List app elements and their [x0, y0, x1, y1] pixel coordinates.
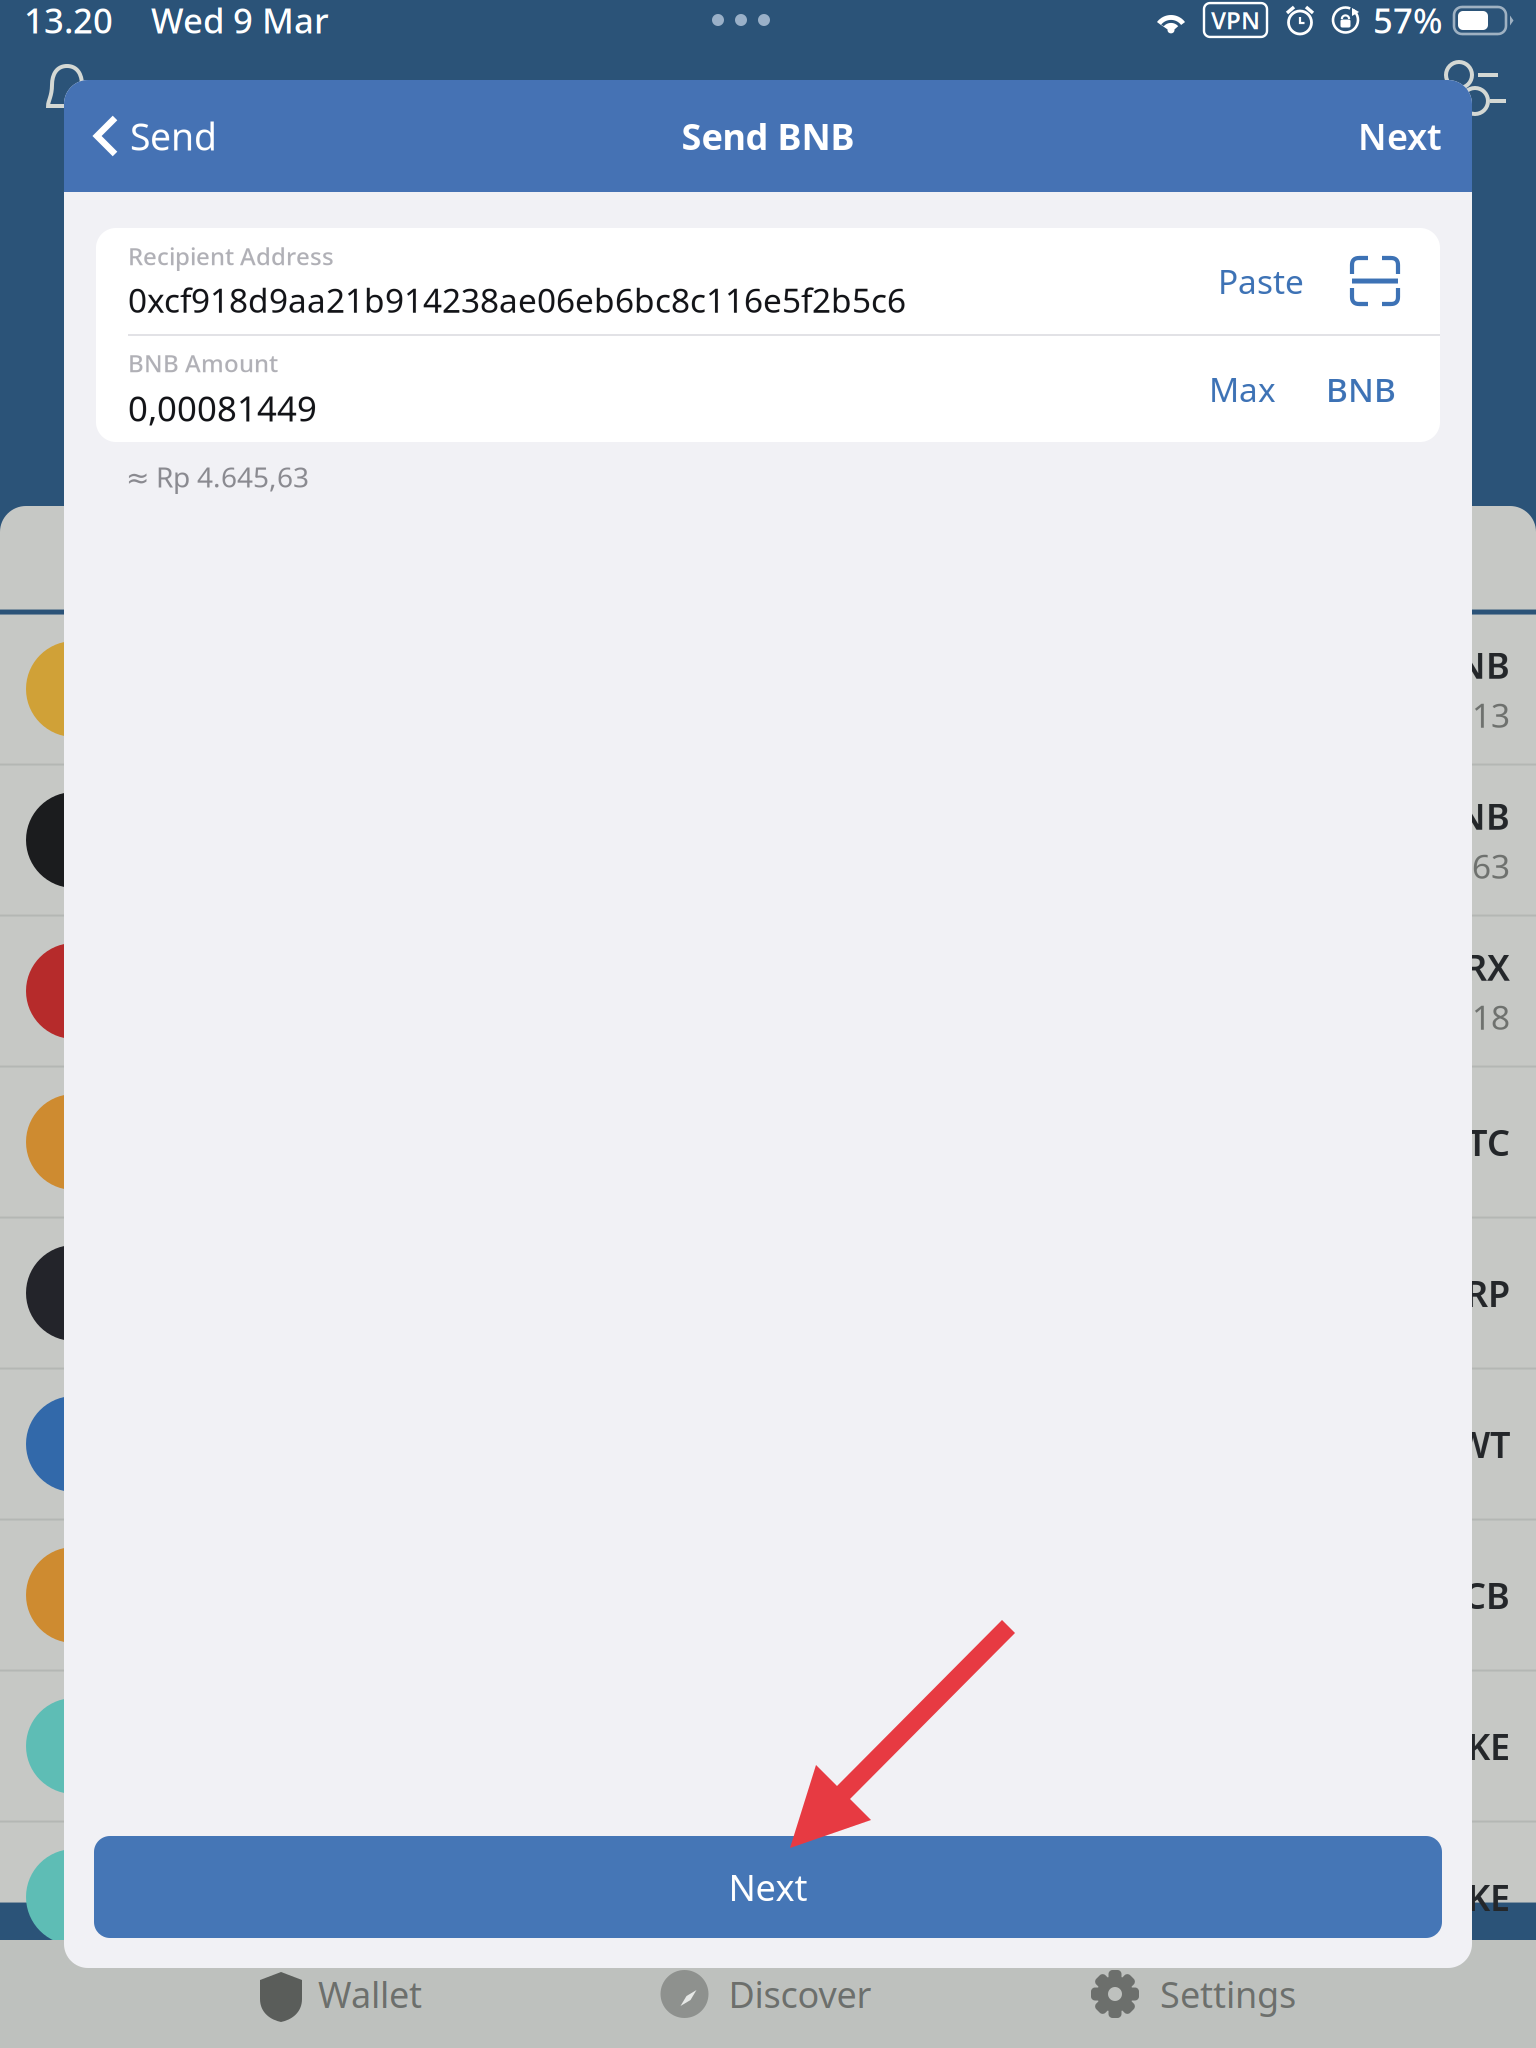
- staticText: XRP: [1442, 1269, 1510, 1317]
- staticText: Wallet: [318, 1970, 422, 2018]
- button[interactable]: BNB: [1314, 357, 1408, 421]
- staticText: Send BNB: [681, 112, 854, 160]
- staticText: BNB: [1326, 367, 1396, 411]
- staticText: KE: [1467, 1722, 1510, 1770]
- staticText: WT: [1456, 1420, 1510, 1468]
- button[interactable]: Discover: [618, 1940, 918, 2048]
- staticText: Recipient Address: [128, 240, 334, 272]
- button[interactable]: Next: [94, 1836, 1442, 1938]
- staticText: Rp 36.615,13: [1308, 693, 1510, 737]
- staticText: BNB: [1433, 641, 1510, 689]
- staticText: Next: [1358, 112, 1442, 160]
- staticText: TRX: [1444, 943, 1510, 991]
- staticText: Rp 8.126,18: [1327, 995, 1510, 1039]
- button[interactable]: Wallet: [191, 1940, 491, 2048]
- staticText: 13.20: [24, 0, 113, 43]
- staticText: 0xcf918d9aa21b914238ae06eb6bc8c116e5f2b5…: [128, 278, 906, 322]
- staticText: Max: [1209, 367, 1276, 411]
- staticText: BNB: [1433, 792, 1510, 840]
- staticText: VPN: [1211, 4, 1260, 36]
- button[interactable]: Max: [1197, 357, 1288, 421]
- staticText: Next: [728, 1863, 807, 1911]
- button[interactable]: Next: [1350, 98, 1450, 174]
- staticText: BTC: [1443, 1118, 1510, 1166]
- button[interactable]: Scan QR code: [1342, 248, 1408, 314]
- staticText: CB: [1463, 1571, 1510, 1619]
- staticText: 57%: [1373, 0, 1443, 43]
- staticText: ≈ Rp 4.645,63: [126, 458, 309, 495]
- staticText: Discover: [728, 1970, 871, 2018]
- staticText: BNB Amount: [128, 347, 278, 379]
- staticText: Send: [130, 111, 217, 161]
- button[interactable]: Send: [86, 97, 225, 175]
- button[interactable]: Paste: [1206, 249, 1316, 313]
- staticText: Rp 4.645,63: [1327, 844, 1510, 888]
- staticText: Wed 9 Mar: [151, 0, 329, 43]
- staticText: Paste: [1218, 259, 1304, 303]
- staticText: Settings: [1160, 1970, 1296, 2018]
- staticText: KE: [1467, 1873, 1510, 1921]
- button[interactable]: Settings: [1045, 1940, 1345, 2048]
- staticText: 0,00081449: [128, 385, 317, 431]
